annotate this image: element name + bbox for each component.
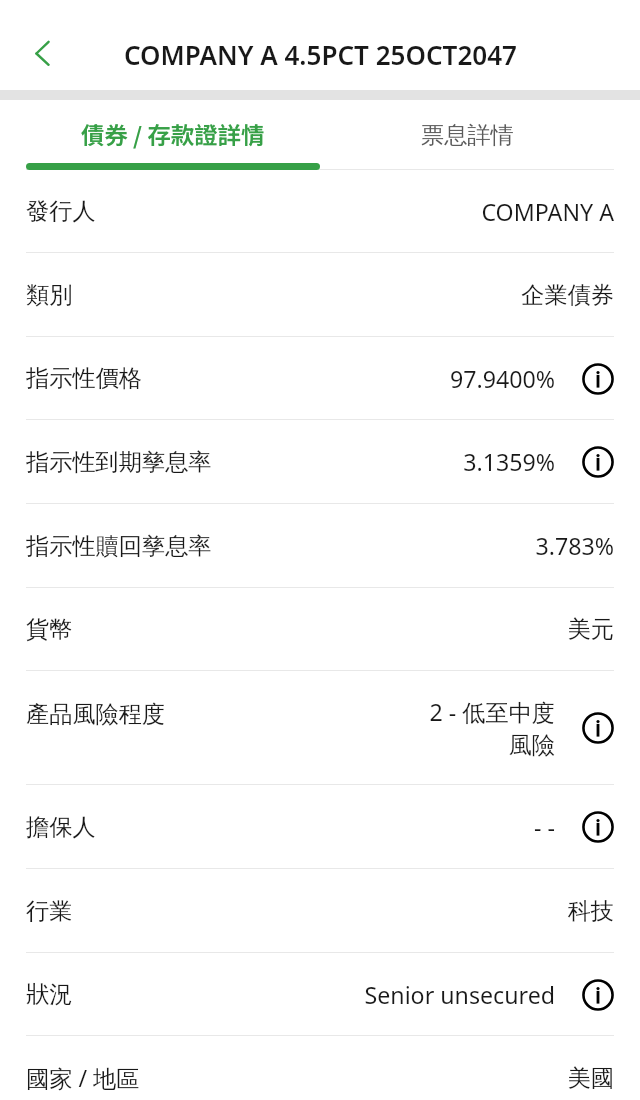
staticText: COMPANY A xyxy=(481,196,614,228)
staticText: 票息詳情 xyxy=(421,121,514,150)
button[interactable]: 類別 xyxy=(0,253,640,337)
staticText: 3.783% xyxy=(535,530,614,562)
staticText: 貨幣 xyxy=(26,615,73,644)
button[interactable]: 貨幣 xyxy=(0,588,640,671)
staticText: 美元 xyxy=(567,615,614,644)
button[interactable]: 指示性贖回孳息率 xyxy=(0,504,640,588)
button[interactable]: More information xyxy=(582,811,614,843)
staticText: 狀況 xyxy=(26,980,73,1009)
staticText: 行業 xyxy=(26,897,73,926)
button[interactable]: More information xyxy=(582,712,614,744)
staticText: 科技 xyxy=(567,897,614,926)
button[interactable]: 票息詳情 xyxy=(320,100,614,170)
button[interactable]: More information xyxy=(582,979,614,1011)
staticText: 指示性贖回孳息率 xyxy=(26,532,212,561)
button[interactable]: 擔保人 xyxy=(0,785,640,869)
button[interactable]: 行業 xyxy=(0,869,640,953)
button[interactable]: 發行人 xyxy=(0,170,640,253)
staticText: 產品風險程度 xyxy=(26,700,166,729)
staticText: 3.1359% xyxy=(463,446,555,478)
staticText: 類別 xyxy=(26,281,73,310)
staticText: Senior unsecured xyxy=(364,979,555,1011)
staticText: 指示性價格 xyxy=(26,364,142,393)
button[interactable]: 指示性價格 xyxy=(0,337,640,420)
button[interactable]: Back xyxy=(14,26,70,82)
button[interactable]: 指示性到期孳息率 xyxy=(0,420,640,504)
staticText: 發行人 xyxy=(26,197,96,226)
staticText: 企業債券 xyxy=(521,281,614,310)
staticText: 97.9400% xyxy=(449,363,555,395)
staticText: 國家 / 地區 xyxy=(26,1062,140,1094)
staticText: 指示性到期孳息率 xyxy=(26,448,212,477)
staticText: 2 - 低至中度 風險 xyxy=(429,696,555,760)
staticText: 擔保人 xyxy=(26,813,96,842)
button[interactable]: 狀況 xyxy=(0,953,640,1036)
staticText: 美國 xyxy=(567,1064,614,1093)
staticText: - - xyxy=(534,811,555,843)
staticText: COMPANY A 4.5PCT 25OCT2047 xyxy=(124,37,517,72)
button[interactable]: More information xyxy=(582,446,614,478)
button[interactable]: 產品風險程度 xyxy=(0,671,640,785)
button[interactable]: 債券 / 存款證詳情 xyxy=(26,100,320,170)
staticText: 債券 / 存款證詳情 xyxy=(81,117,265,151)
button[interactable]: More information xyxy=(582,363,614,395)
button[interactable]: 國家 / 地區 xyxy=(0,1036,640,1100)
